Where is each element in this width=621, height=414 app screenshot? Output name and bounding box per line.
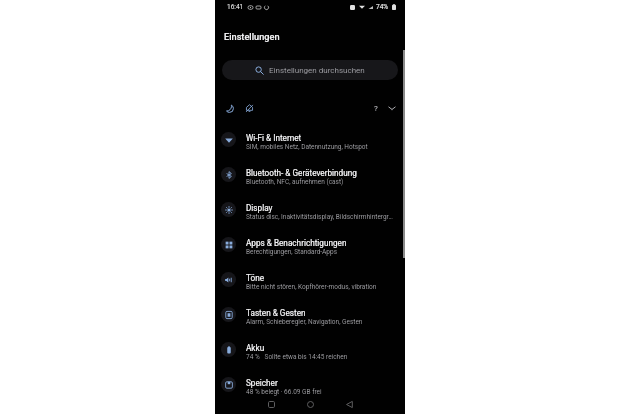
button[interactable]: Tasten & Gesten <box>215 297 405 332</box>
button[interactable]: Display <box>215 192 405 227</box>
staticText: Einstellungen durchsuchen <box>269 66 365 75</box>
staticText: Bluetooth- & Geräteverbindung <box>246 168 357 178</box>
staticText: 74 % Sollte etwa bis 14:45 reichen <box>246 353 348 361</box>
button[interactable]: Startbildschirm <box>301 395 319 413</box>
staticText: Töne <box>246 273 265 283</box>
button[interactable]: Bitte nicht stören <box>242 101 256 115</box>
staticText: Display <box>246 203 273 213</box>
staticText: Akku <box>246 343 265 353</box>
button[interactable]: Apps & Benachrichtigungen <box>215 227 405 262</box>
staticText: Einstellungen <box>224 31 280 42</box>
staticText: 48 % belegt · 66.09 GB frei <box>246 388 322 396</box>
button[interactable]: Übersicht <box>262 395 280 413</box>
staticText: 74% <box>376 3 389 11</box>
staticText: Status disc, Inaktivitätsdisplay, Bildsc… <box>246 213 393 221</box>
staticText: Bitte nicht stören, Kopfhörer-modus, vib… <box>246 283 377 291</box>
staticText: Berechtigungen, Standard-Apps <box>246 248 337 256</box>
button[interactable]: Nachtmodus <box>222 101 236 115</box>
button[interactable]: Einstellungen durchsuchen <box>222 60 398 80</box>
button[interactable]: Wi-Fi & Internet <box>215 122 405 157</box>
staticText: ? <box>374 104 378 113</box>
button[interactable]: Zurück <box>340 395 358 413</box>
button[interactable]: Akku <box>215 332 405 367</box>
staticText: Bluetooth, NFC, aufnehmen (cast) <box>246 178 344 186</box>
button[interactable]: Speicher <box>215 367 405 402</box>
staticText: Speicher <box>246 378 278 388</box>
button[interactable]: Töne <box>215 262 405 297</box>
staticText: Wi-Fi & Internet <box>246 133 302 143</box>
button[interactable]: Mehr anzeigen <box>386 102 398 114</box>
staticText: SIM, mobiles Netz, Datennutzung, Hotspot <box>246 143 368 151</box>
staticText: Alarm, Schieberegler, Navigation, Gesten <box>246 318 363 326</box>
button[interactable]: Bluetooth- & Geräteverbindung <box>215 157 405 192</box>
staticText: Apps & Benachrichtigungen <box>246 238 347 248</box>
button[interactable]: Hilfe <box>370 102 382 114</box>
staticText: Tasten & Gesten <box>246 308 306 318</box>
staticText: 16:41 <box>227 3 244 11</box>
